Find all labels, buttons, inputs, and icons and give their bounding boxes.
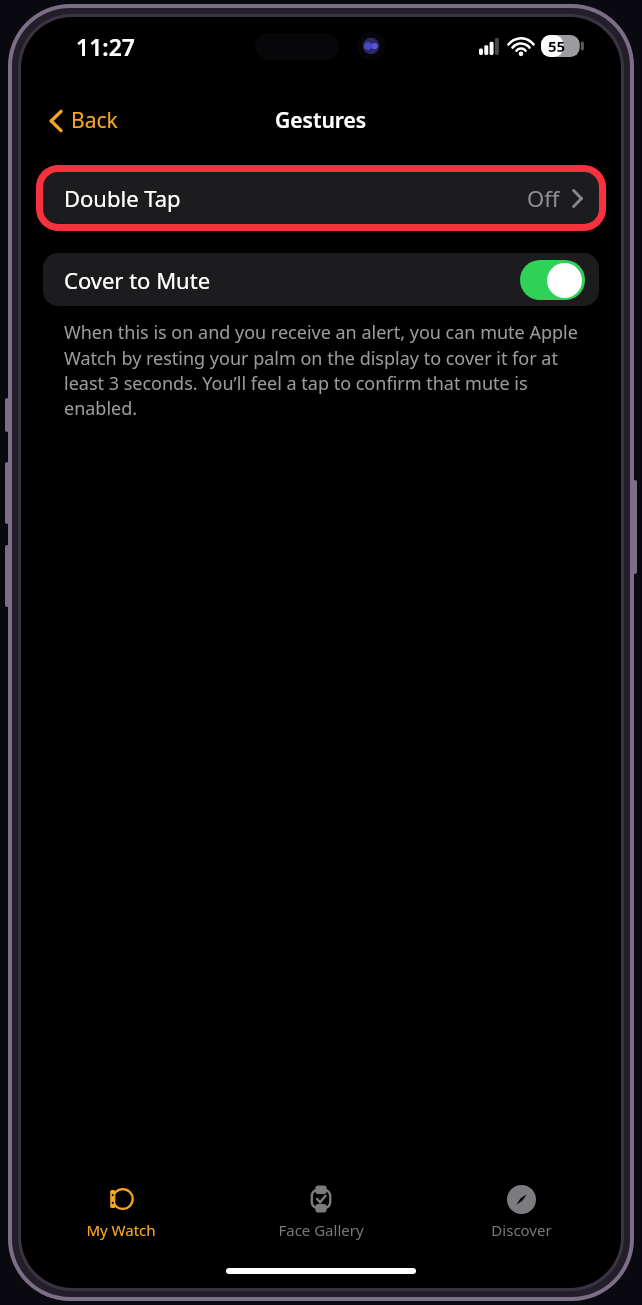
staticText: When this is on and you receive an alert…: [64, 320, 585, 420]
button[interactable]: Face Gallery: [221, 1172, 421, 1250]
button[interactable]: Discover: [421, 1172, 621, 1250]
staticText: Face Gallery: [278, 1220, 364, 1240]
button[interactable]: Back: [43, 102, 124, 139]
button[interactable]: My Watch: [21, 1172, 221, 1250]
staticText: 11:27: [76, 31, 135, 62]
staticText: Cover to Mute: [64, 265, 211, 295]
button[interactable]: Cover to Mute toggle, on: [520, 260, 585, 300]
staticText: Back: [71, 106, 118, 135]
staticText: Double Tap: [64, 183, 181, 213]
button[interactable]: Double Tap: [43, 172, 599, 224]
staticText: Off: [527, 183, 560, 213]
staticText: Discover: [491, 1220, 552, 1240]
button[interactable]: Cover to Mute: [43, 253, 599, 306]
staticText: Gestures: [275, 106, 367, 135]
staticText: 55: [548, 36, 566, 56]
staticText: My Watch: [86, 1220, 156, 1240]
